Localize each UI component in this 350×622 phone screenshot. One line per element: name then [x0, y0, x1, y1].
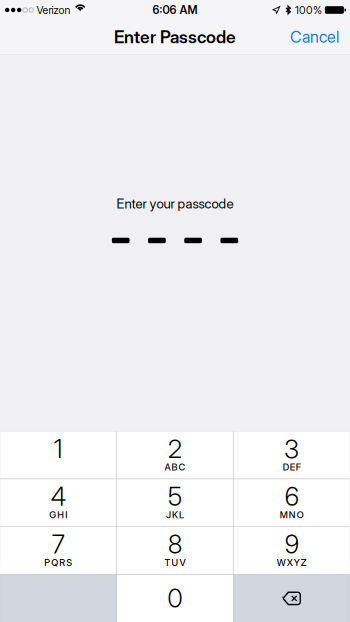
staticText: GHI [49, 509, 67, 520]
staticText: TUV [164, 557, 185, 568]
button[interactable]: 2 [117, 431, 233, 479]
button[interactable]: 1 [0, 431, 116, 479]
staticText: MNO [280, 509, 304, 520]
button[interactable]: 6 [234, 479, 350, 526]
staticText: ABC [164, 461, 185, 473]
button[interactable]: Cancel [282, 20, 347, 54]
button[interactable]: 4 [0, 479, 116, 526]
staticText: 7 [52, 529, 65, 560]
staticText: Enter your passcode [116, 196, 233, 212]
staticText: 3 [284, 433, 299, 464]
staticText: DEF [283, 461, 301, 473]
staticText: 8 [168, 529, 182, 560]
staticText: 4 [51, 481, 66, 512]
staticText: 6 [285, 481, 299, 512]
staticText: 1 [54, 433, 63, 464]
staticText: 2 [168, 433, 182, 464]
staticText: 0 [167, 583, 182, 614]
staticText: 6:06 AM [152, 3, 197, 17]
staticText: Enter Passcode [114, 26, 236, 47]
button[interactable]: 8 [117, 527, 233, 574]
staticText: 100% [295, 3, 322, 16]
button[interactable]: 9 [234, 527, 350, 574]
staticText: JKL [166, 509, 184, 520]
button[interactable]: Delete [234, 575, 350, 622]
button[interactable]: 7 [0, 527, 116, 574]
staticText: Cancel [290, 27, 339, 47]
staticText: WXYZ [277, 557, 307, 568]
staticText: 9 [285, 529, 299, 560]
button[interactable]: 3 [234, 431, 350, 479]
staticText: PQRS [44, 557, 72, 568]
button[interactable]: 0 [117, 575, 233, 622]
staticText: 5 [168, 481, 182, 512]
staticText: Verizon [36, 3, 70, 16]
button[interactable]: 5 [117, 479, 233, 526]
